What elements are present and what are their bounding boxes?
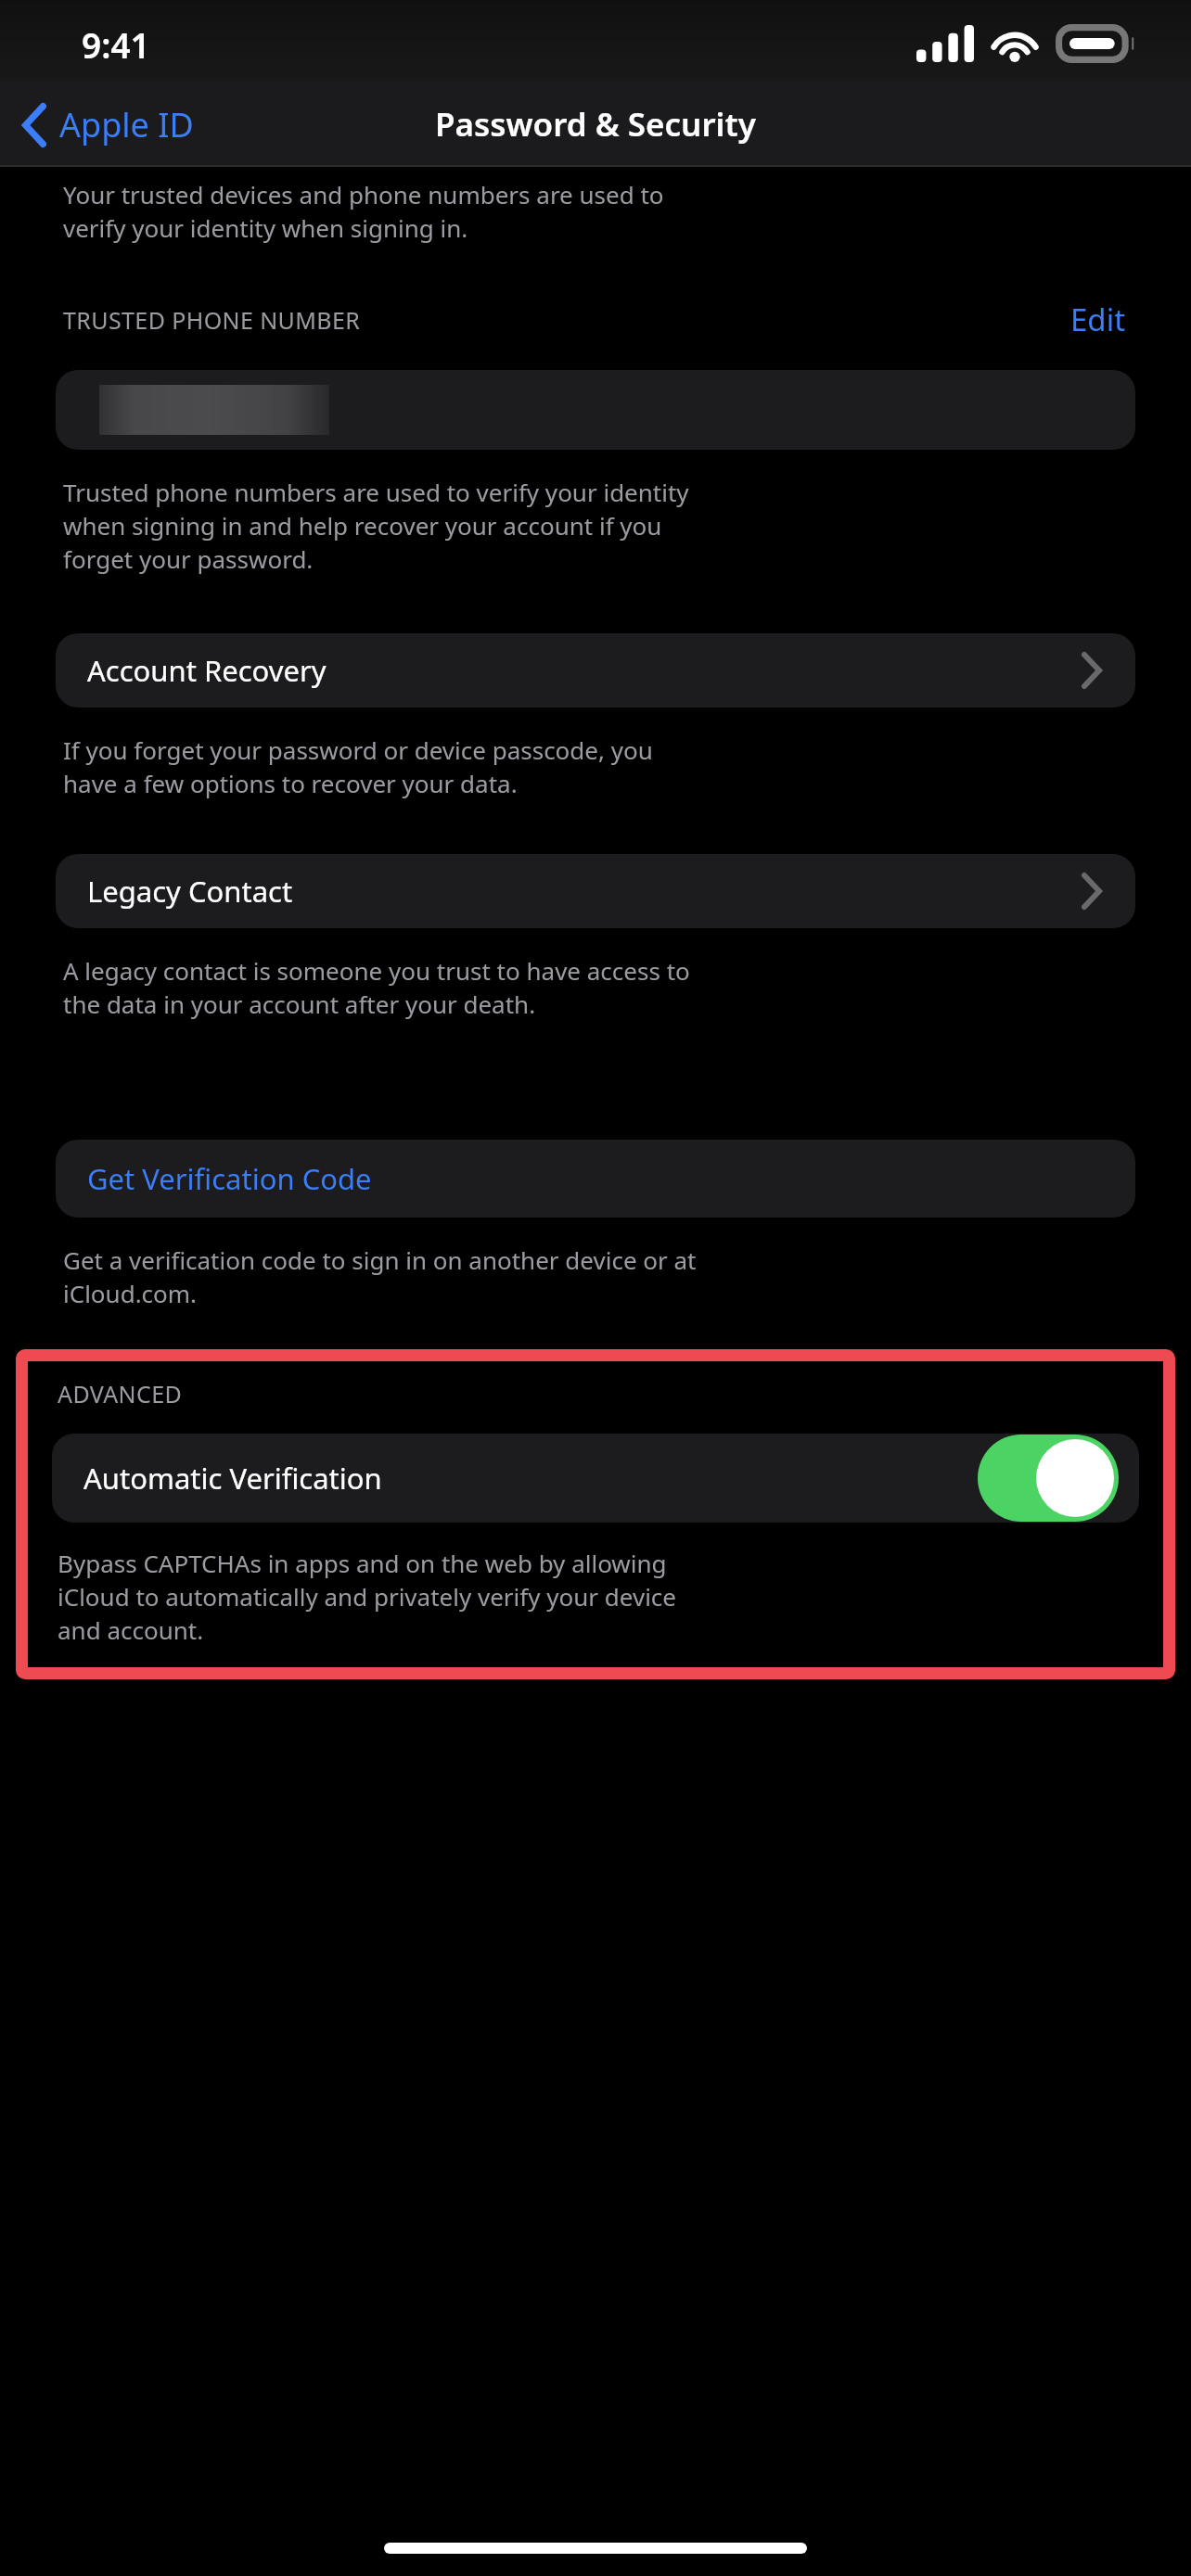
staticText: Account Recovery xyxy=(87,651,1082,690)
staticText: 9:41 xyxy=(82,21,150,68)
button[interactable]: Automatic Verification xyxy=(52,1434,1139,1523)
staticText: Legacy Contact xyxy=(87,872,1082,911)
button[interactable]: Edit xyxy=(1063,293,1133,346)
button[interactable] xyxy=(56,370,1135,450)
staticText: A legacy contact is someone you trust to… xyxy=(63,954,1126,1021)
staticText: Your trusted devices and phone numbers a… xyxy=(63,178,1126,245)
staticText: Get Verification Code xyxy=(87,1159,372,1198)
staticText: If you forget your password or device pa… xyxy=(63,733,1126,800)
staticText: Password & Security xyxy=(435,102,756,147)
staticText: Get a verification code to sign in on an… xyxy=(63,1243,1126,1310)
staticText: Trusted phone numbers are used to verify… xyxy=(63,476,1126,576)
staticText: Edit xyxy=(1070,299,1126,340)
staticText: TRUSTED PHONE NUMBER xyxy=(63,304,1063,336)
button[interactable]: Account Recovery xyxy=(56,633,1135,708)
button[interactable]: Apple ID xyxy=(0,95,207,155)
other: Automatic Verification, on xyxy=(978,1435,1119,1522)
staticText: Automatic Verification xyxy=(83,1459,978,1498)
staticText: Apple ID xyxy=(59,102,194,147)
button[interactable]: Legacy Contact xyxy=(56,854,1135,928)
staticText: ADVANCED xyxy=(58,1378,183,1409)
button[interactable]: Get Verification Code xyxy=(56,1140,1135,1218)
staticText: Bypass CAPTCHAs in apps and on the web b… xyxy=(58,1547,676,1647)
